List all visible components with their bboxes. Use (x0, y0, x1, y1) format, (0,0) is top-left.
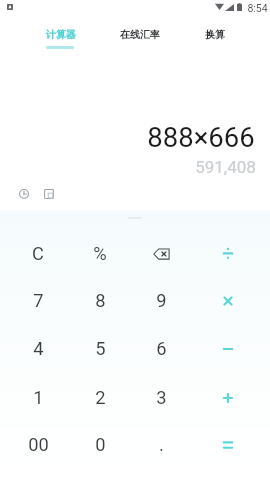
button[interactable]: Multiply (199, 278, 257, 323)
button[interactable]: 4 (9, 326, 67, 371)
staticText: 8 (95, 290, 106, 311)
staticText: 9 (156, 290, 167, 311)
staticText: 4 (33, 338, 44, 359)
button[interactable]: Divide (199, 231, 257, 276)
other: Backspace (153, 248, 170, 260)
button[interactable]: 7 (9, 278, 67, 323)
button[interactable]: 换算 (184, 28, 246, 60)
other: Multiply (222, 295, 234, 307)
staticText: 5 (95, 338, 106, 359)
staticText: 7 (33, 290, 44, 311)
staticText: 1 (33, 387, 44, 408)
staticText: 换算 (205, 28, 225, 41)
button[interactable]: Floating window (39, 184, 59, 204)
staticText: 2 (95, 387, 106, 408)
other: Equals (222, 439, 234, 451)
other: Plus (222, 392, 234, 404)
button[interactable]: 3 (132, 375, 190, 420)
button[interactable]: 在线汇率 (109, 28, 171, 60)
staticText: 6 (156, 338, 167, 359)
button[interactable]: Minus (199, 326, 257, 371)
staticText: 888×666 (147, 121, 255, 153)
button[interactable]: 8 (71, 278, 129, 323)
staticText: 00 (28, 434, 49, 455)
button[interactable]: . (132, 422, 190, 467)
staticText: 在线汇率 (120, 28, 160, 41)
staticText: C (32, 243, 44, 264)
button[interactable]: 1 (9, 375, 67, 420)
staticText: % (93, 243, 107, 264)
staticText: 591,408 (195, 157, 256, 177)
other: Minus (222, 343, 234, 355)
button[interactable]: 6 (132, 326, 190, 371)
other: Divide (222, 248, 234, 260)
button[interactable]: 计算器 (30, 28, 92, 60)
staticText: 计算器 (46, 28, 76, 41)
button[interactable]: Backspace (132, 231, 190, 276)
button[interactable]: 00 (9, 422, 67, 467)
button[interactable]: 5 (71, 326, 129, 371)
button[interactable]: History (14, 184, 34, 204)
staticText: . (159, 434, 164, 455)
button[interactable]: % (71, 231, 129, 276)
button[interactable]: Plus (199, 375, 257, 420)
button[interactable]: C (9, 231, 67, 276)
button[interactable]: 9 (132, 278, 190, 323)
staticText: 3 (156, 387, 167, 408)
staticText: 8:54 (247, 2, 268, 14)
button[interactable]: 2 (71, 375, 129, 420)
staticText: 0 (95, 434, 106, 455)
button[interactable]: 0 (71, 422, 129, 467)
button[interactable]: Equals (199, 422, 257, 467)
